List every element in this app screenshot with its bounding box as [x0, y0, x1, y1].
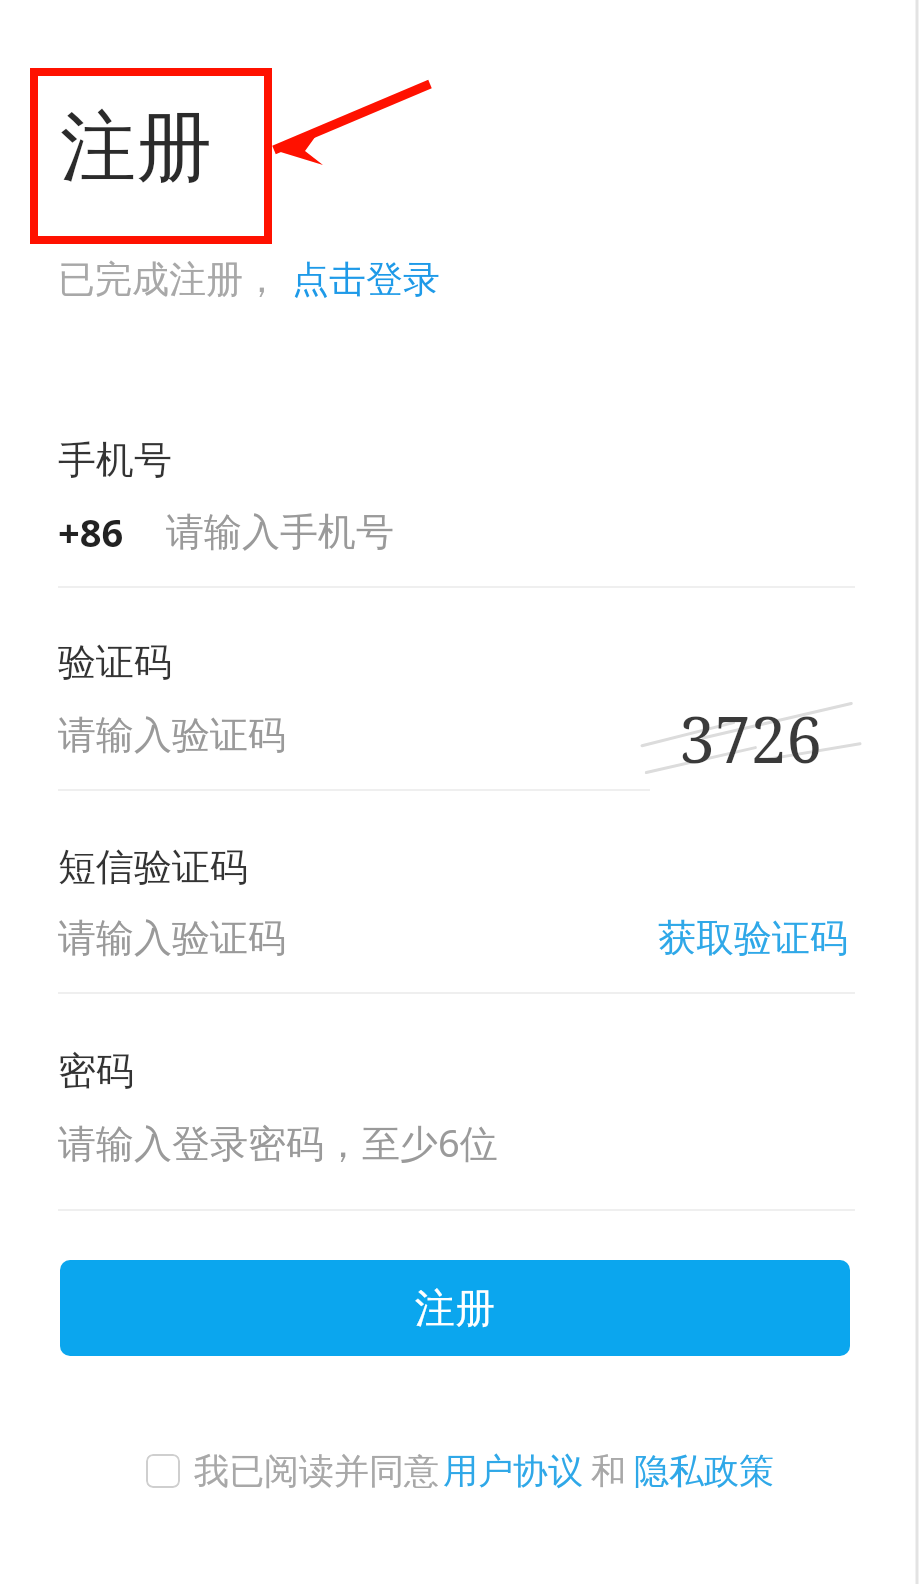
staticText: 注册 [60, 100, 212, 196]
button[interactable]: 请输入登录密码，至少6位 [58, 1110, 848, 1174]
staticText: +86 [58, 506, 124, 558]
staticText: 注册 [415, 1283, 495, 1333]
staticText: 请输入手机号 [166, 508, 394, 556]
button[interactable]: 用户协议 [443, 1449, 583, 1493]
staticText: 我已阅读并同意 [194, 1449, 439, 1493]
staticText: 隐私政策 [634, 1449, 774, 1493]
button[interactable]: 获取验证码 [658, 906, 855, 970]
staticText: 密码 [58, 1047, 134, 1095]
button[interactable]: 隐私政策 [634, 1449, 774, 1493]
button[interactable]: 注册 [60, 100, 212, 196]
staticText: 点击登录 [292, 256, 440, 303]
button[interactable]: Captcha image, tap to refresh [642, 690, 860, 786]
button[interactable]: Agree to terms checkbox [146, 1454, 180, 1488]
staticText: 短信验证码 [58, 843, 248, 891]
button[interactable]: 请输入验证码 [58, 906, 618, 970]
staticText: 请输入验证码 [58, 914, 286, 962]
staticText: 和 [591, 1449, 626, 1493]
staticText: 用户协议 [443, 1449, 583, 1493]
staticText: 请输入验证码 [58, 711, 286, 759]
staticText: 3726 [679, 695, 823, 782]
staticText: 验证码 [58, 638, 172, 686]
staticText: 手机号 [58, 436, 172, 484]
staticText: 请输入登录密码，至少6位 [58, 1116, 498, 1168]
button[interactable]: 点击登录 [292, 256, 440, 303]
staticText: 已完成注册， [58, 256, 280, 303]
button[interactable]: 请输入验证码 [58, 702, 618, 768]
button[interactable]: +86 [58, 500, 848, 564]
staticText: 获取验证码 [658, 914, 848, 962]
button[interactable]: 注册 [60, 1260, 850, 1356]
